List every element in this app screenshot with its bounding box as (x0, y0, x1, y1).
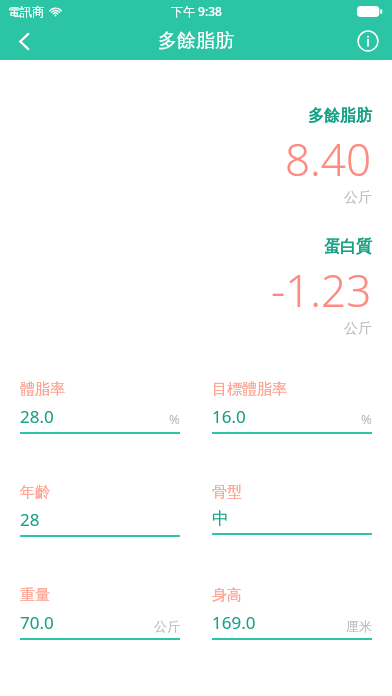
staticText: 中 (212, 508, 229, 529)
staticText: -1.23 (271, 260, 372, 320)
staticText: 骨型 (212, 483, 242, 502)
staticText: 70.0 (20, 611, 54, 634)
button[interactable]: 目標體脂率 (212, 380, 372, 434)
staticText: 下午 9:38 (171, 3, 222, 19)
staticText: 目標體脂率 (212, 380, 287, 399)
button[interactable]: Back (0, 22, 48, 60)
button[interactable]: 年齡 (20, 483, 180, 537)
button[interactable]: 骨型 (212, 483, 372, 535)
button[interactable]: 身高 (212, 586, 372, 640)
staticText: % (169, 410, 180, 428)
button[interactable]: Information (344, 22, 392, 60)
staticText: 多餘脂肪 (158, 29, 234, 53)
staticText: 蛋白質 (324, 237, 372, 257)
staticText: 公斤 (344, 320, 372, 338)
staticText: 16.0 (212, 405, 246, 428)
staticText: 28.0 (20, 405, 54, 428)
staticText: % (361, 410, 372, 428)
button[interactable]: 體脂率 (20, 380, 180, 434)
staticText: 厘米 (346, 618, 372, 634)
staticText: 身高 (212, 586, 242, 605)
staticText: 多餘脂肪 (308, 106, 372, 126)
staticText: 公斤 (344, 189, 372, 207)
staticText: 公斤 (154, 618, 180, 634)
staticText: 28 (20, 508, 40, 531)
staticText: 169.0 (212, 611, 256, 634)
staticText: 8.40 (285, 129, 372, 189)
staticText: 重量 (20, 586, 50, 605)
staticText: 體脂率 (20, 380, 65, 399)
staticText: 電訊商 (8, 4, 44, 19)
button[interactable]: 重量 (20, 586, 180, 640)
staticText: 年齡 (20, 483, 50, 502)
